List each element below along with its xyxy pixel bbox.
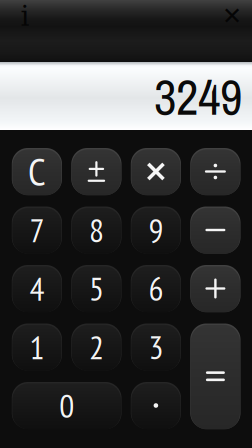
staticText: 1 bbox=[29, 325, 44, 368]
staticText: 7 bbox=[29, 208, 44, 251]
staticText: 9 bbox=[148, 208, 163, 251]
staticText: C bbox=[28, 146, 46, 196]
button[interactable]: Plus minus bbox=[71, 148, 121, 195]
staticText: 2 bbox=[89, 325, 104, 368]
button[interactable]: Multiply bbox=[131, 148, 181, 195]
button[interactable]: Clear bbox=[12, 148, 62, 195]
staticText: 4 bbox=[29, 267, 44, 310]
button[interactable]: Equals bbox=[190, 323, 240, 429]
button[interactable]: 7 bbox=[12, 206, 62, 253]
button[interactable]: 9 bbox=[131, 206, 181, 253]
staticText: 5 bbox=[89, 267, 104, 310]
button[interactable]: 5 bbox=[71, 265, 121, 312]
button[interactable]: Close bbox=[215, 1, 249, 31]
button[interactable]: 6 bbox=[131, 265, 181, 312]
button[interactable]: 1 bbox=[12, 323, 62, 370]
staticText: ✕ bbox=[222, 2, 242, 30]
staticText: 3249 bbox=[154, 64, 242, 130]
staticText: 0 bbox=[59, 384, 74, 427]
button[interactable]: Plus bbox=[190, 265, 240, 312]
staticText: 6 bbox=[148, 267, 163, 310]
staticText: 8 bbox=[89, 208, 104, 251]
button[interactable]: 0 bbox=[12, 382, 121, 429]
button[interactable]: Minus bbox=[190, 206, 240, 253]
button[interactable]: Divide bbox=[190, 148, 240, 195]
button[interactable]: 3 bbox=[131, 323, 181, 370]
button[interactable]: Info bbox=[8, 1, 42, 31]
staticText: i bbox=[20, 0, 29, 32]
button[interactable]: 4 bbox=[12, 265, 62, 312]
button[interactable]: 8 bbox=[71, 206, 121, 253]
button[interactable]: Decimal point bbox=[131, 382, 181, 429]
button[interactable]: 2 bbox=[71, 323, 121, 370]
staticText: 3 bbox=[148, 325, 163, 368]
